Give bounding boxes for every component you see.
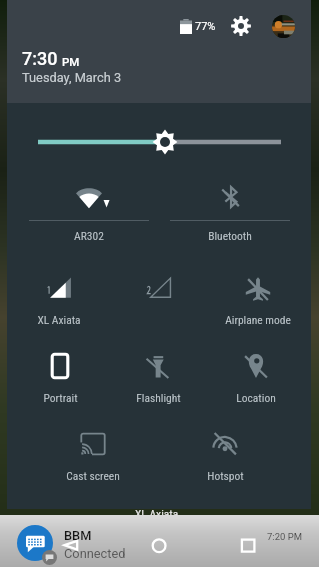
staticText: Bluetooth: [208, 229, 252, 242]
button[interactable]: Home: [144, 530, 174, 560]
staticText: XL Axiata: [135, 507, 179, 520]
button[interactable]: Wi-Fi, AR302: [19, 170, 159, 245]
button[interactable]: Cast screen: [43, 417, 143, 491]
button[interactable]: Clock, 7:30 PM: [22, 48, 80, 69]
staticText: PM: [62, 55, 80, 68]
staticText: AR302: [74, 229, 104, 242]
button[interactable]: Portrait: [10, 339, 110, 413]
staticText: Cast screen: [66, 469, 120, 482]
button[interactable]: SIM 2, no service: [109, 262, 209, 336]
staticText: Airplane mode: [225, 313, 291, 326]
staticText: Hotspot: [207, 469, 244, 482]
button[interactable]: User profile: [272, 15, 295, 38]
button[interactable]: Brightness: [7, 118, 311, 164]
button[interactable]: Location: [206, 339, 306, 413]
button[interactable]: Flashlight: [108, 339, 208, 413]
staticText: Connected: [64, 546, 126, 561]
staticText: 77%: [195, 20, 216, 33]
staticText: Portrait: [43, 391, 78, 404]
staticText: 7:20 PM: [267, 531, 302, 542]
staticText: 7:30: [22, 48, 58, 69]
button[interactable]: Bluetooth: [160, 170, 300, 245]
staticText: Location: [236, 391, 276, 404]
button[interactable]: BBM notification, Connected: [0, 515, 319, 567]
button[interactable]: Back: [50, 530, 92, 560]
button[interactable]: Settings: [231, 16, 251, 36]
button[interactable]: Hotspot: [175, 417, 275, 491]
button[interactable]: Recent apps: [233, 530, 263, 560]
staticText: BBM: [64, 528, 92, 543]
button[interactable]: Tuesday, March 3: [22, 70, 122, 85]
button[interactable]: Airplane mode: [208, 262, 308, 336]
staticText: XL Axiata: [37, 313, 81, 326]
staticText: Flashlight: [136, 391, 181, 404]
button[interactable]: Mobile data, XL Axiata: [9, 262, 109, 336]
